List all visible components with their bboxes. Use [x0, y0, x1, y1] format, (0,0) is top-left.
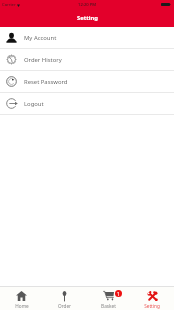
button[interactable]: Setting: [130, 287, 174, 309]
staticText: 12:20 PM: [78, 2, 97, 8]
staticText: Setting: [144, 303, 160, 309]
staticText: Carrier: [2, 2, 16, 8]
staticText: Home: [15, 303, 29, 309]
staticText: Order: [58, 303, 71, 309]
button[interactable]: 1: [86, 287, 130, 309]
staticText: Setting: [77, 14, 98, 22]
button[interactable]: Order History: [0, 49, 174, 71]
staticText: 1: [117, 291, 120, 297]
button[interactable]: Logout: [0, 93, 174, 115]
button[interactable]: Home: [0, 287, 43, 309]
staticText: Order History: [24, 56, 62, 64]
staticText: My Account: [24, 34, 57, 42]
staticText: Reset Password: [24, 78, 68, 86]
button[interactable]: Reset Password: [0, 71, 174, 93]
button[interactable]: Order: [43, 287, 86, 309]
staticText: Basket: [101, 303, 116, 309]
staticText: Logout: [24, 100, 44, 108]
button[interactable]: My Account: [0, 27, 174, 49]
